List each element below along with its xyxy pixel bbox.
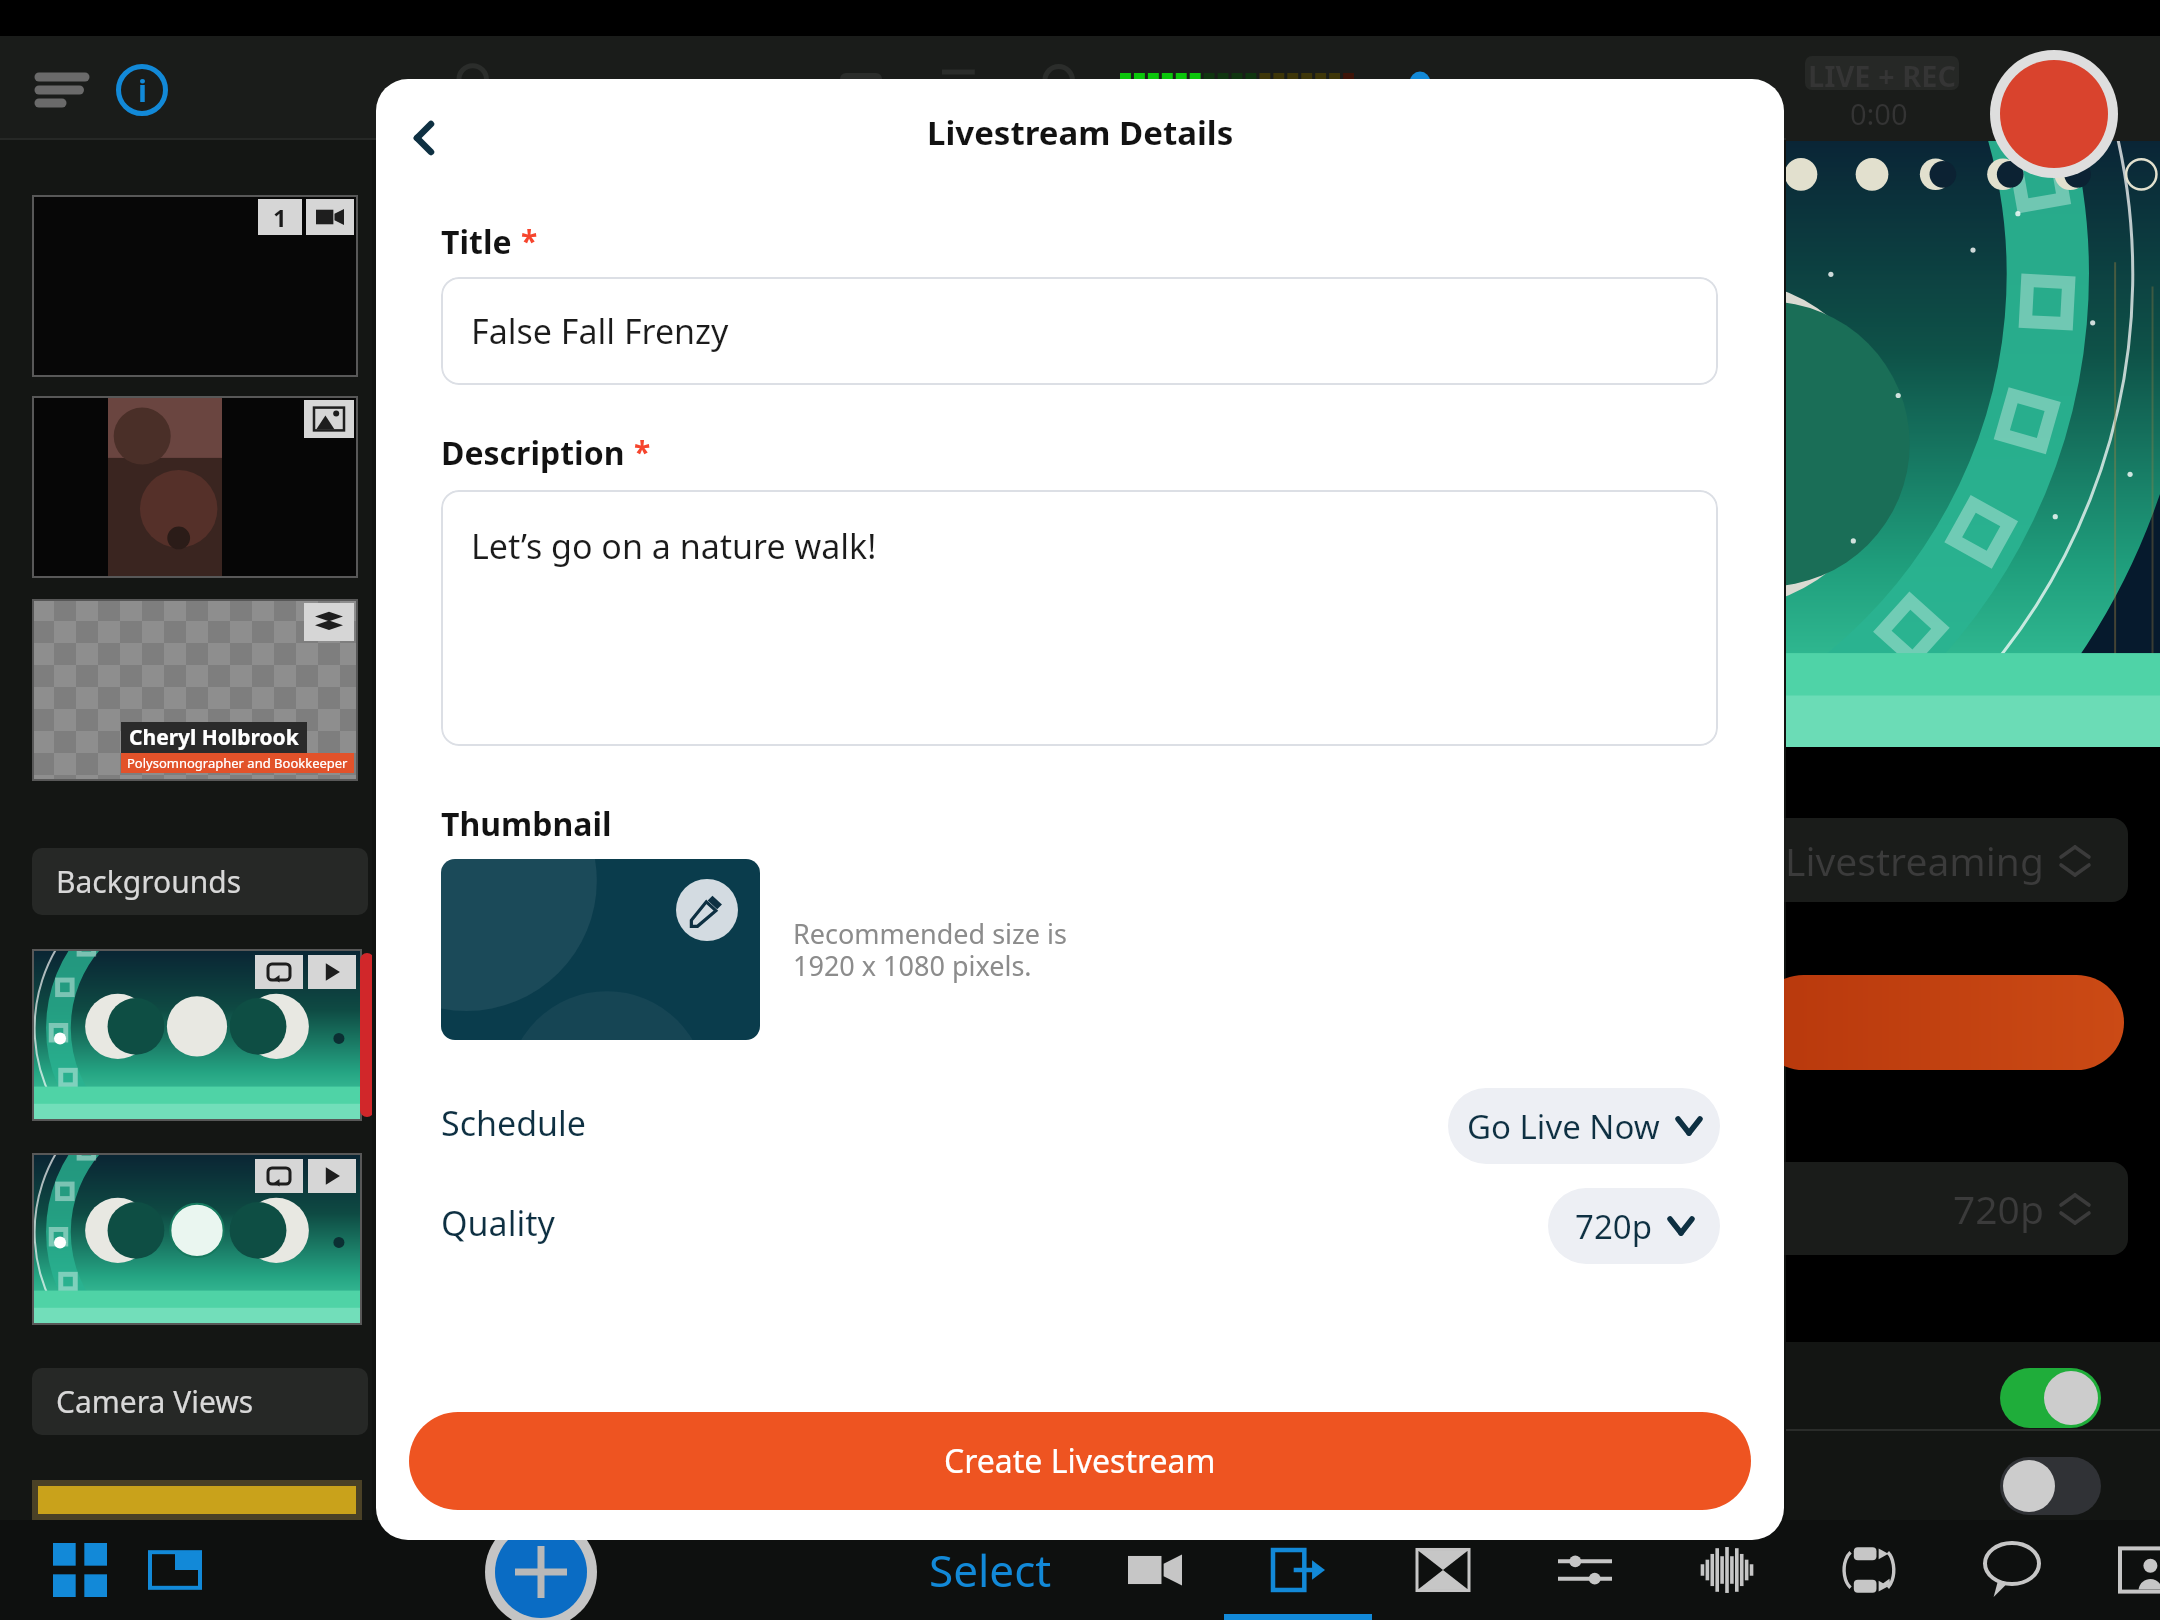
button[interactable]: Transition	[1391, 1520, 1495, 1620]
staticText: Select	[929, 1540, 1052, 1600]
button[interactable]: Chat	[1960, 1520, 2064, 1620]
staticText: Camera Views	[56, 1381, 254, 1422]
button[interactable]: Camera view slot	[32, 1480, 362, 1520]
staticText: 0:00	[1850, 94, 1908, 133]
button[interactable]: Layout	[123, 1520, 227, 1620]
button[interactable]: Guests	[2093, 1520, 2160, 1620]
button[interactable]: Info	[111, 59, 173, 121]
button[interactable]: 1	[32, 195, 358, 377]
button[interactable]: Add	[495, 1526, 587, 1618]
staticText: Backgrounds	[56, 861, 242, 902]
staticText: Go Live Now	[1467, 1104, 1660, 1149]
button[interactable]: Quality	[376, 1188, 1784, 1264]
button[interactable]: Schedule	[376, 1088, 1784, 1164]
staticText: Title	[441, 220, 512, 264]
button[interactable]: False Fall Frenzy	[441, 277, 1718, 385]
button[interactable]	[32, 396, 358, 578]
staticText: False Fall Frenzy	[471, 308, 729, 354]
button[interactable]: Thumbnail	[441, 859, 760, 1040]
button[interactable]: Go Live Now	[1448, 1088, 1720, 1164]
staticText: LIVE + REC	[1808, 56, 1957, 90]
button[interactable]	[32, 949, 362, 1121]
staticText: *	[634, 431, 651, 472]
staticText: Description	[441, 431, 625, 475]
button[interactable]	[1786, 1342, 2160, 1430]
staticText: *	[521, 220, 538, 261]
button[interactable]: Grid	[28, 1520, 132, 1620]
staticText: 1920 x 1080 pixels.	[793, 947, 1032, 984]
staticText: 720p	[1953, 1182, 2044, 1235]
button[interactable]: Go live	[1756, 975, 2124, 1070]
staticText: 720p	[1575, 1204, 1652, 1249]
button[interactable]: Audio	[1675, 1520, 1779, 1620]
staticText: Li	[1590, 70, 1622, 124]
button[interactable]: Camera Views	[32, 1368, 368, 1435]
staticText: Recommended size is	[793, 915, 1067, 952]
button[interactable]: Backgrounds	[32, 848, 368, 915]
button[interactable]: Let’s go on a nature walk!	[441, 490, 1718, 746]
button[interactable]: 720p	[1756, 1162, 2128, 1255]
staticText: Let’s go on a nature walk!	[471, 523, 877, 569]
staticText: i	[138, 70, 147, 111]
staticText: 1	[273, 201, 287, 234]
button[interactable]: Menu	[26, 59, 98, 131]
staticText: Schedule	[441, 1100, 587, 1146]
button[interactable]: Output	[1246, 1520, 1350, 1620]
staticText: Quality	[441, 1200, 555, 1246]
button[interactable]: Create Livestream	[409, 1412, 1751, 1510]
staticText: Livestreaming	[1785, 834, 2044, 887]
button[interactable]: Camera	[1103, 1520, 1207, 1620]
button[interactable]: Select	[895, 1520, 1085, 1620]
button[interactable]: Mixer	[1533, 1520, 1637, 1620]
staticText: Cheryl Holbrook	[129, 723, 299, 752]
staticText: Livestream Details	[927, 110, 1234, 155]
staticText: Polysomnographer and Bookkeeper	[127, 754, 348, 772]
staticText: Thumbnail	[441, 802, 612, 846]
button[interactable]: Switcher	[1818, 1520, 1922, 1620]
button[interactable]: 720p	[1548, 1188, 1720, 1264]
button[interactable]: Cheryl Holbrook	[32, 599, 358, 781]
button[interactable]	[1786, 1430, 2160, 1520]
staticText: Create Livestream	[944, 1439, 1216, 1483]
button[interactable]: Livestreaming	[1756, 818, 2128, 902]
button[interactable]: Back	[392, 106, 456, 170]
button[interactable]: Record	[1990, 50, 2118, 178]
button[interactable]	[32, 1153, 362, 1325]
